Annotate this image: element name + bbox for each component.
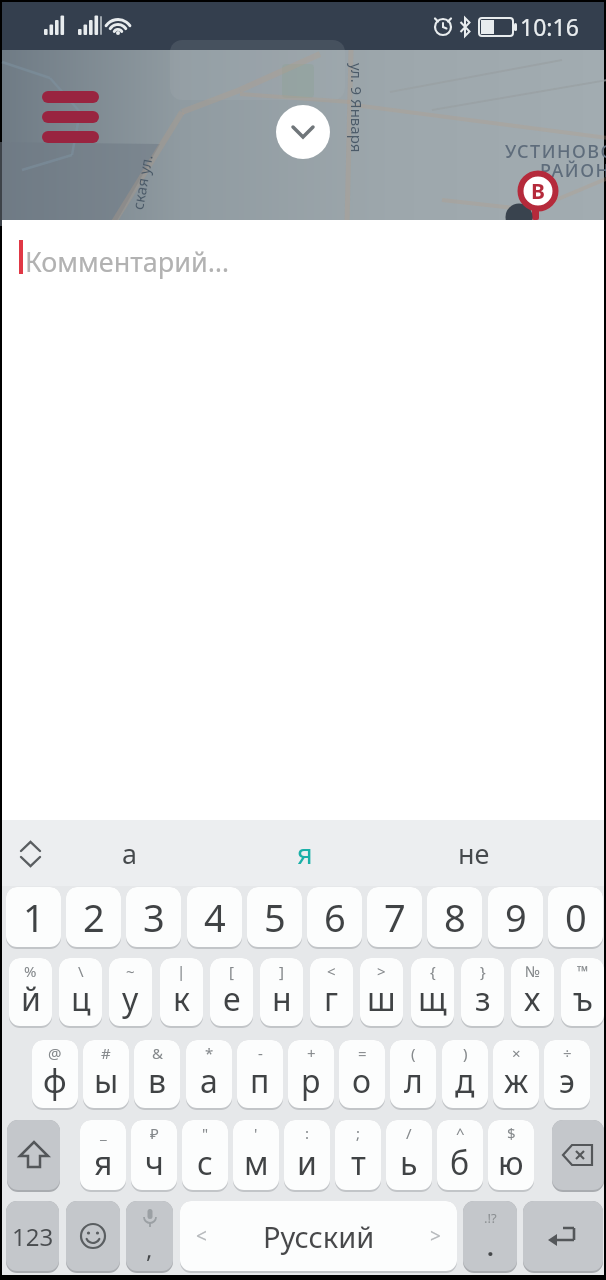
staticText: # xyxy=(101,1043,111,1063)
staticText: ул. 9 Января xyxy=(347,63,367,153)
button[interactable] xyxy=(66,1201,120,1271)
button[interactable] xyxy=(42,91,99,143)
button[interactable]: $ xyxy=(488,1120,534,1190)
button[interactable]: ÷ xyxy=(544,1040,590,1108)
staticText: @ xyxy=(48,1043,62,1063)
button[interactable]: 0 xyxy=(548,887,603,947)
button[interactable]: % xyxy=(9,958,52,1026)
button[interactable]: { xyxy=(411,958,454,1026)
button[interactable]: _ xyxy=(80,1120,126,1190)
button[interactable]: не xyxy=(439,820,509,886)
staticText: $ xyxy=(507,1123,516,1143)
button[interactable]: ' xyxy=(233,1120,279,1190)
button[interactable]: я xyxy=(270,820,340,886)
staticText: 2 xyxy=(83,891,105,943)
button[interactable] xyxy=(21,842,40,866)
button[interactable]: ] xyxy=(260,958,303,1026)
staticText: ' xyxy=(254,1123,258,1143)
button[interactable]: " xyxy=(182,1120,228,1190)
button[interactable]: № xyxy=(511,958,554,1026)
staticText: [ xyxy=(229,961,234,981)
button[interactable]: - xyxy=(237,1040,283,1108)
staticText: т xyxy=(351,1141,366,1185)
staticText: < xyxy=(327,961,336,981)
staticText: . xyxy=(487,1230,494,1263)
staticText: и xyxy=(297,1141,317,1185)
staticText: ш xyxy=(367,977,396,1021)
staticText: к xyxy=(173,977,190,1021)
staticText: ; xyxy=(356,1123,361,1143)
button[interactable]: ₽ xyxy=(131,1120,177,1190)
staticText: _ xyxy=(100,1123,107,1143)
button[interactable]: а xyxy=(95,820,165,886)
staticText: × xyxy=(512,1043,521,1063)
button[interactable]: ( xyxy=(390,1040,436,1108)
staticText: .!? xyxy=(484,1209,497,1227)
button[interactable]: # xyxy=(83,1040,129,1108)
staticText: № xyxy=(525,961,541,981)
button[interactable]: Русский xyxy=(180,1201,457,1271)
button[interactable]: < xyxy=(310,958,353,1026)
button[interactable]: 7 xyxy=(367,887,422,947)
staticText: ж xyxy=(504,1059,529,1103)
button[interactable]: 9 xyxy=(488,887,543,947)
button[interactable]: Комментарий… xyxy=(2,220,604,820)
button[interactable]: 3 xyxy=(126,887,181,947)
button[interactable]: [ xyxy=(210,958,253,1026)
button[interactable]: ~ xyxy=(109,958,152,1026)
staticText: б xyxy=(450,1141,470,1185)
staticText: " xyxy=(202,1123,209,1143)
staticText: 10:16 xyxy=(520,11,579,42)
staticText: п xyxy=(250,1059,270,1103)
button[interactable]: ^ xyxy=(437,1120,483,1190)
button[interactable] xyxy=(552,1120,604,1190)
button[interactable] xyxy=(7,1120,60,1190)
staticText: ÷ xyxy=(563,1043,572,1063)
button[interactable]: = xyxy=(339,1040,385,1108)
button[interactable]: 123 xyxy=(6,1201,59,1271)
button[interactable] xyxy=(276,105,330,159)
staticText: * xyxy=(205,1043,214,1063)
button[interactable]: + xyxy=(288,1040,334,1108)
button[interactable] xyxy=(523,1201,603,1271)
staticText: = xyxy=(358,1043,367,1063)
staticText: я xyxy=(297,835,313,872)
button[interactable]: * xyxy=(186,1040,232,1108)
button[interactable]: ; xyxy=(335,1120,381,1190)
staticText: щ xyxy=(418,977,447,1021)
staticText: ) xyxy=(463,1043,468,1063)
button[interactable]: ) xyxy=(442,1040,488,1108)
button[interactable]: .!? xyxy=(463,1201,517,1271)
button[interactable]: 2 xyxy=(66,887,121,947)
staticText: РАЙОНА xyxy=(540,158,606,183)
button[interactable]: @ xyxy=(32,1040,78,1108)
button[interactable]: 1 xyxy=(6,887,61,947)
button[interactable]: / xyxy=(386,1120,432,1190)
button[interactable]: | xyxy=(160,958,203,1026)
button[interactable]: ™ xyxy=(561,958,604,1026)
staticText: ™ xyxy=(577,961,589,981)
staticText: о xyxy=(352,1059,372,1103)
staticText: > xyxy=(430,1223,441,1249)
staticText: м xyxy=(244,1141,269,1185)
staticText: я xyxy=(94,1141,113,1185)
staticText: УСТИНОВСК xyxy=(505,139,606,164)
button[interactable]: 8 xyxy=(427,887,482,947)
staticText: 4 xyxy=(204,891,226,943)
button[interactable]: \ xyxy=(59,958,102,1026)
button[interactable]: 6 xyxy=(307,887,362,947)
staticText: с xyxy=(197,1141,213,1185)
staticText: \ xyxy=(78,961,84,981)
button[interactable]: 4 xyxy=(187,887,242,947)
button[interactable]: , xyxy=(126,1201,173,1271)
button[interactable]: > xyxy=(360,958,403,1026)
button[interactable]: } xyxy=(461,958,504,1026)
button[interactable]: : xyxy=(284,1120,330,1190)
staticText: 9 xyxy=(505,891,527,943)
staticText: : xyxy=(305,1123,310,1143)
button[interactable]: × xyxy=(493,1040,539,1108)
staticText: + xyxy=(307,1043,316,1063)
staticText: 3 xyxy=(143,891,165,943)
button[interactable]: & xyxy=(134,1040,180,1108)
button[interactable]: 5 xyxy=(247,887,302,947)
